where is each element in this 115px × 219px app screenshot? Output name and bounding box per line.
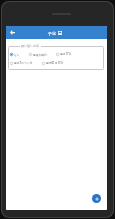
button[interactable]: 毎月7のつく日: [10, 61, 42, 65]
button[interactable]: Add: [92, 194, 101, 203]
staticText: 毎年01月17日: [46, 61, 64, 65]
button[interactable]: 毎週火曜日: [29, 53, 56, 56]
button[interactable]: Back: [8, 28, 17, 37]
staticText: 予定: [48, 31, 57, 36]
staticText: なし: [14, 53, 20, 56]
staticText: 毎週火曜日: [33, 53, 47, 56]
button[interactable]: Save: [57, 30, 63, 36]
button[interactable]: 毎月17日: [56, 52, 81, 56]
staticText: 毎月7のつく日: [14, 61, 33, 65]
button[interactable]: なし: [10, 53, 29, 56]
staticText: 毎月17日: [60, 52, 72, 56]
staticText: 繰り返し設定: [21, 44, 40, 48]
button[interactable]: 毎年01月17日: [42, 61, 73, 65]
